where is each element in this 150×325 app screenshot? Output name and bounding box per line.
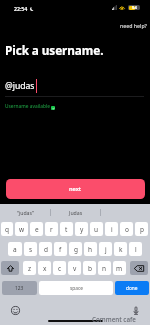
staticText: need help?	[120, 22, 147, 29]
staticText: d	[44, 245, 48, 254]
staticText: space	[70, 285, 83, 292]
staticText: p	[140, 225, 144, 234]
staticText: Comment cafe	[92, 315, 136, 323]
button[interactable]: i	[105, 222, 118, 236]
staticText: 22:54	[14, 5, 28, 12]
button[interactable]: l	[129, 242, 142, 256]
button[interactable]: “judas”	[0, 204, 50, 220]
staticText: v	[73, 264, 77, 273]
staticText: t	[65, 225, 68, 234]
button[interactable]: next	[6, 179, 145, 199]
staticText: o	[125, 225, 129, 234]
staticText: b	[88, 264, 92, 273]
button[interactable]: Emoji keyboard	[11, 306, 20, 315]
staticText: h	[88, 245, 93, 254]
button[interactable]: f	[54, 242, 67, 256]
button[interactable]: q	[1, 222, 13, 236]
staticText: c	[58, 264, 62, 273]
button[interactable]: p	[135, 222, 148, 236]
button[interactable]: Backspace	[130, 261, 148, 275]
button[interactable]: m	[113, 261, 126, 275]
staticText: k	[119, 245, 123, 254]
button[interactable]: u	[90, 222, 103, 236]
button[interactable]: c	[53, 261, 66, 275]
staticText: Username available	[5, 103, 50, 109]
staticText: q	[5, 225, 9, 234]
button[interactable]: h	[84, 242, 97, 256]
staticText: done	[126, 285, 138, 292]
button[interactable]: a	[8, 242, 22, 256]
staticText: e	[35, 225, 39, 234]
button[interactable]: b	[83, 261, 96, 275]
button[interactable]: Judas	[51, 204, 100, 220]
button[interactable]: 123	[2, 281, 37, 295]
staticText: “judas”	[17, 209, 34, 216]
staticText: y	[80, 225, 84, 234]
staticText: i	[111, 225, 113, 234]
staticText: a	[13, 245, 17, 254]
staticText: @judas	[5, 80, 35, 92]
staticText: x	[43, 264, 47, 273]
button[interactable]: e	[30, 222, 43, 236]
button[interactable]: space	[39, 281, 113, 295]
staticText: next	[69, 185, 82, 193]
button[interactable]: Dictation	[132, 306, 140, 315]
staticText: g	[74, 245, 78, 254]
button[interactable]: k	[114, 242, 127, 256]
staticText: r	[50, 225, 53, 234]
button[interactable]: y	[75, 222, 88, 236]
staticText: z	[28, 264, 32, 273]
button[interactable]: d	[39, 242, 52, 256]
button[interactable]: z	[23, 261, 36, 275]
button[interactable]: o	[120, 222, 133, 236]
staticText: Judas	[69, 209, 83, 216]
staticText: 54	[132, 5, 137, 10]
button[interactable]: s	[24, 242, 37, 256]
button[interactable]: v	[68, 261, 81, 275]
staticText: f	[59, 245, 62, 254]
staticText: w	[19, 225, 25, 234]
staticText: j	[105, 245, 107, 254]
staticText: u	[94, 225, 99, 234]
staticText: 123	[15, 285, 24, 292]
button[interactable]: t	[60, 222, 73, 236]
button[interactable]: g	[69, 242, 82, 256]
staticText: s	[29, 245, 33, 254]
button[interactable]: done	[115, 281, 149, 295]
button[interactable]: r	[45, 222, 58, 236]
staticText: n	[102, 264, 107, 273]
staticText: Pick a username.	[5, 42, 104, 58]
staticText: m	[116, 264, 123, 273]
button[interactable]: n	[98, 261, 111, 275]
staticText: l	[135, 245, 137, 254]
button[interactable]: need help?	[118, 20, 149, 31]
button[interactable]: j	[99, 242, 112, 256]
button[interactable]: Shift	[1, 261, 19, 275]
button[interactable]: x	[38, 261, 51, 275]
button[interactable]: w	[15, 222, 28, 236]
